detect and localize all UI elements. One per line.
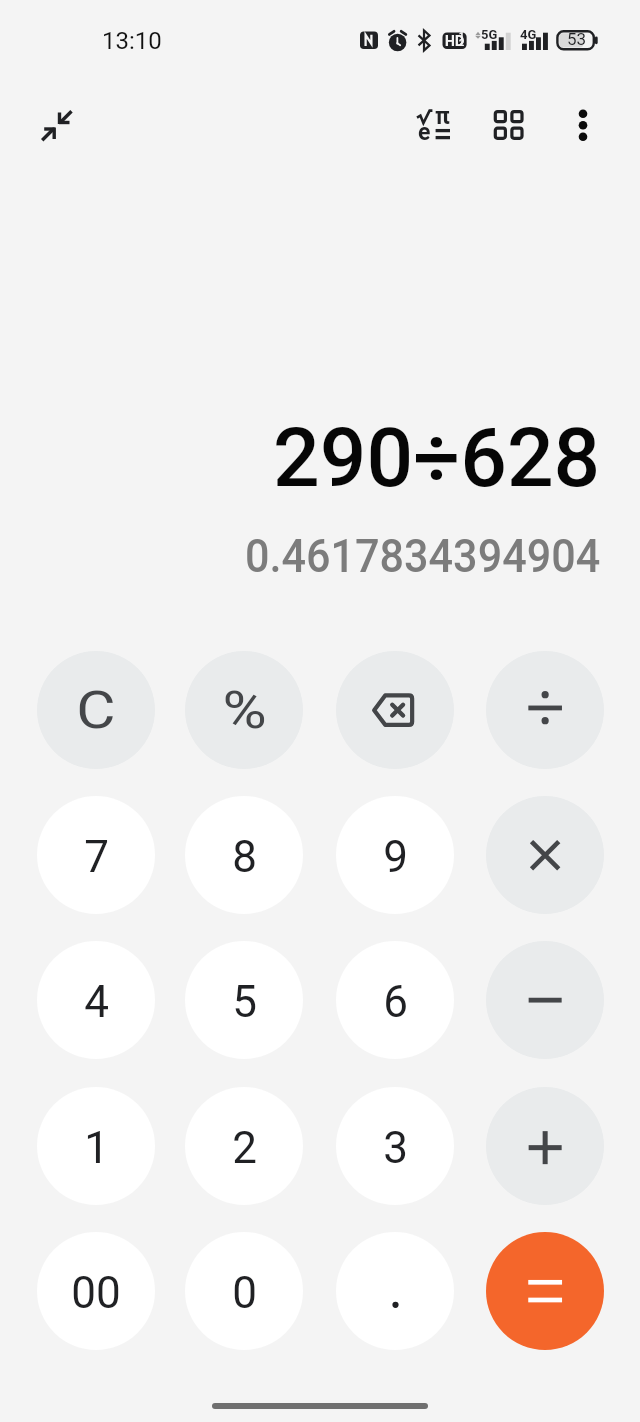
button[interactable]: Divide (486, 651, 604, 769)
staticText: 2 (232, 1122, 257, 1174)
staticText: 1 (84, 1122, 109, 1174)
button[interactable]: Scientific mode (404, 98, 460, 154)
button[interactable]: 2 (185, 1087, 303, 1205)
button[interactable]: 6 (336, 941, 454, 1059)
staticText: 3 (383, 1122, 408, 1174)
staticText: 290÷628 (273, 411, 601, 506)
staticText: 00 (71, 1267, 121, 1319)
button[interactable]: 7 (37, 796, 155, 914)
staticText: 53 (567, 29, 587, 49)
button[interactable]: 1 (37, 1087, 155, 1205)
staticText: 5 (232, 976, 257, 1028)
button[interactable]: Subtract (486, 941, 604, 1059)
staticText: C (76, 680, 116, 741)
button[interactable]: 0 (185, 1232, 303, 1350)
staticText: 4G (520, 27, 537, 42)
staticText: 9 (383, 831, 408, 883)
button[interactable]: 5 (185, 941, 303, 1059)
staticText: 1 (459, 31, 465, 42)
staticText: π (435, 103, 450, 130)
button[interactable]: % (185, 651, 303, 769)
button[interactable]: 8 (185, 796, 303, 914)
button[interactable]: 00 (37, 1232, 155, 1350)
staticText: 0.4617834394904 (245, 528, 601, 583)
staticText: 0 (232, 1267, 257, 1319)
staticText: 2 (459, 38, 465, 49)
staticText: e (418, 119, 431, 146)
staticText: 7 (84, 831, 109, 883)
button[interactable]: C (37, 651, 155, 769)
staticText: 4 (84, 976, 109, 1028)
staticText: 13:10 (102, 27, 162, 55)
button[interactable]: More options (555, 98, 611, 154)
staticText: 5G (481, 27, 498, 42)
button[interactable]: Multiply (486, 796, 604, 914)
staticText: HD (445, 33, 465, 49)
button[interactable]: Equals (486, 1232, 604, 1350)
button[interactable]: History (480, 98, 536, 154)
button[interactable]: Delete (336, 651, 454, 769)
staticText: 8 (232, 831, 257, 883)
staticText: 6 (383, 976, 408, 1028)
staticText: % (222, 680, 267, 741)
button[interactable]: 9 (336, 796, 454, 914)
button[interactable]: Collapse (28, 98, 84, 154)
button[interactable]: 4 (37, 941, 155, 1059)
button[interactable]: 3 (336, 1087, 454, 1205)
button[interactable]: Add (486, 1087, 604, 1205)
button[interactable]: Decimal point (336, 1232, 454, 1350)
